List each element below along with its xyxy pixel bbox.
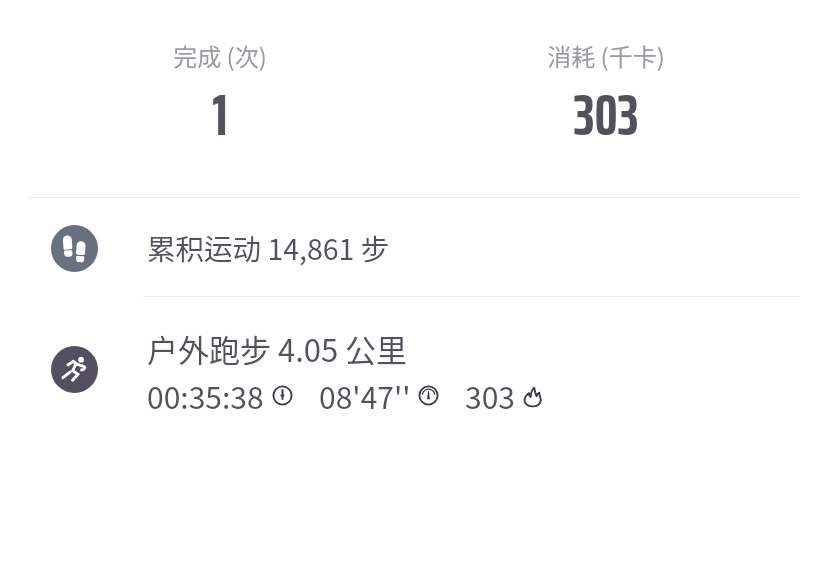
button[interactable]: 完成 (次) [0, 0, 440, 164]
staticText: 完成 (次) [173, 38, 267, 73]
button[interactable]: Outdoor running [0, 297, 828, 441]
staticText: 303 [465, 374, 515, 417]
staticText: 累积运动 14,861 步 [147, 227, 390, 268]
staticText: 303 [573, 69, 639, 160]
staticText: 00:35:38 [147, 374, 264, 417]
other: Outdoor running [51, 346, 98, 393]
staticText: 08'47'' [319, 374, 411, 417]
staticText: 消耗 (千卡) [547, 38, 665, 73]
button[interactable]: Steps [0, 199, 828, 298]
staticText: 1 [212, 69, 228, 160]
staticText: 户外跑步 4.05 公里 [147, 326, 408, 371]
button[interactable]: 消耗 (千卡) [386, 0, 826, 164]
other: Steps [51, 225, 98, 272]
